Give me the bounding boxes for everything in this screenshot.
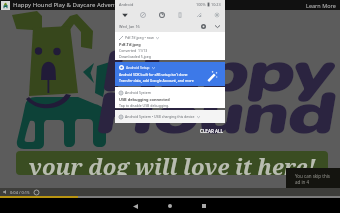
button[interactable]: Pdf-Tif.jpeg • now (115, 32, 225, 60)
button[interactable]: CLEAR ALL (198, 126, 225, 136)
button[interactable]: Back (128, 199, 142, 213)
staticText: 100% (196, 2, 206, 7)
button[interactable]: Expand (214, 23, 221, 30)
staticText: Transfer data, add Google Account, and m… (119, 78, 194, 83)
button[interactable]: Recent apps (197, 199, 211, 213)
button[interactable]: Android System • USB charging this devic… (115, 110, 225, 123)
staticText: your dog will love it here! (29, 151, 316, 175)
button[interactable]: Home (163, 199, 177, 213)
staticText: Pdf-Tif.jpeg • now (125, 35, 154, 40)
staticText: Wed, Jan 16 (119, 24, 140, 29)
staticText: CLEAR ALL (200, 128, 223, 134)
staticText: Downloaded 5.jpeg (119, 54, 151, 59)
button[interactable]: Night light (211, 9, 222, 20)
button[interactable]: Android Setup (115, 62, 225, 86)
staticText: 10:23 (211, 2, 221, 7)
staticText: Converted 11/13 (119, 48, 148, 53)
button[interactable]: Mute (2, 189, 8, 195)
staticText: Pdf-Tif.jpeg (119, 42, 141, 47)
staticText: Learn More (306, 2, 336, 9)
button[interactable]: Wi-Fi (119, 9, 130, 20)
button[interactable]: Learn More (305, 1, 337, 10)
staticText: Android SDK built for x86 setup isn't do… (119, 72, 188, 77)
button[interactable]: Battery saver (174, 9, 185, 20)
button[interactable]: Settings (200, 23, 207, 30)
staticText: Android Setup (126, 65, 150, 70)
staticText: Tap to disable USB debugging. (119, 103, 170, 108)
staticText: USB debugging connected (119, 97, 170, 102)
button[interactable]: Mobile data (193, 9, 204, 20)
staticText: Android (119, 2, 134, 7)
staticText: Happy Hound Play & Daycare Adventure Wal… (13, 1, 145, 9)
staticText: Android System (125, 90, 151, 95)
staticText: Android System • USB charging this devic… (125, 114, 195, 119)
staticText: 0:04 / 0:15 (10, 190, 30, 195)
button[interactable]: Do not disturb (137, 9, 148, 20)
button[interactable]: Android System (115, 87, 225, 108)
button[interactable]: Rotate (156, 9, 167, 20)
button[interactable]: Info (33, 189, 39, 195)
staticText: You can skip this ad in 4 (295, 173, 331, 185)
